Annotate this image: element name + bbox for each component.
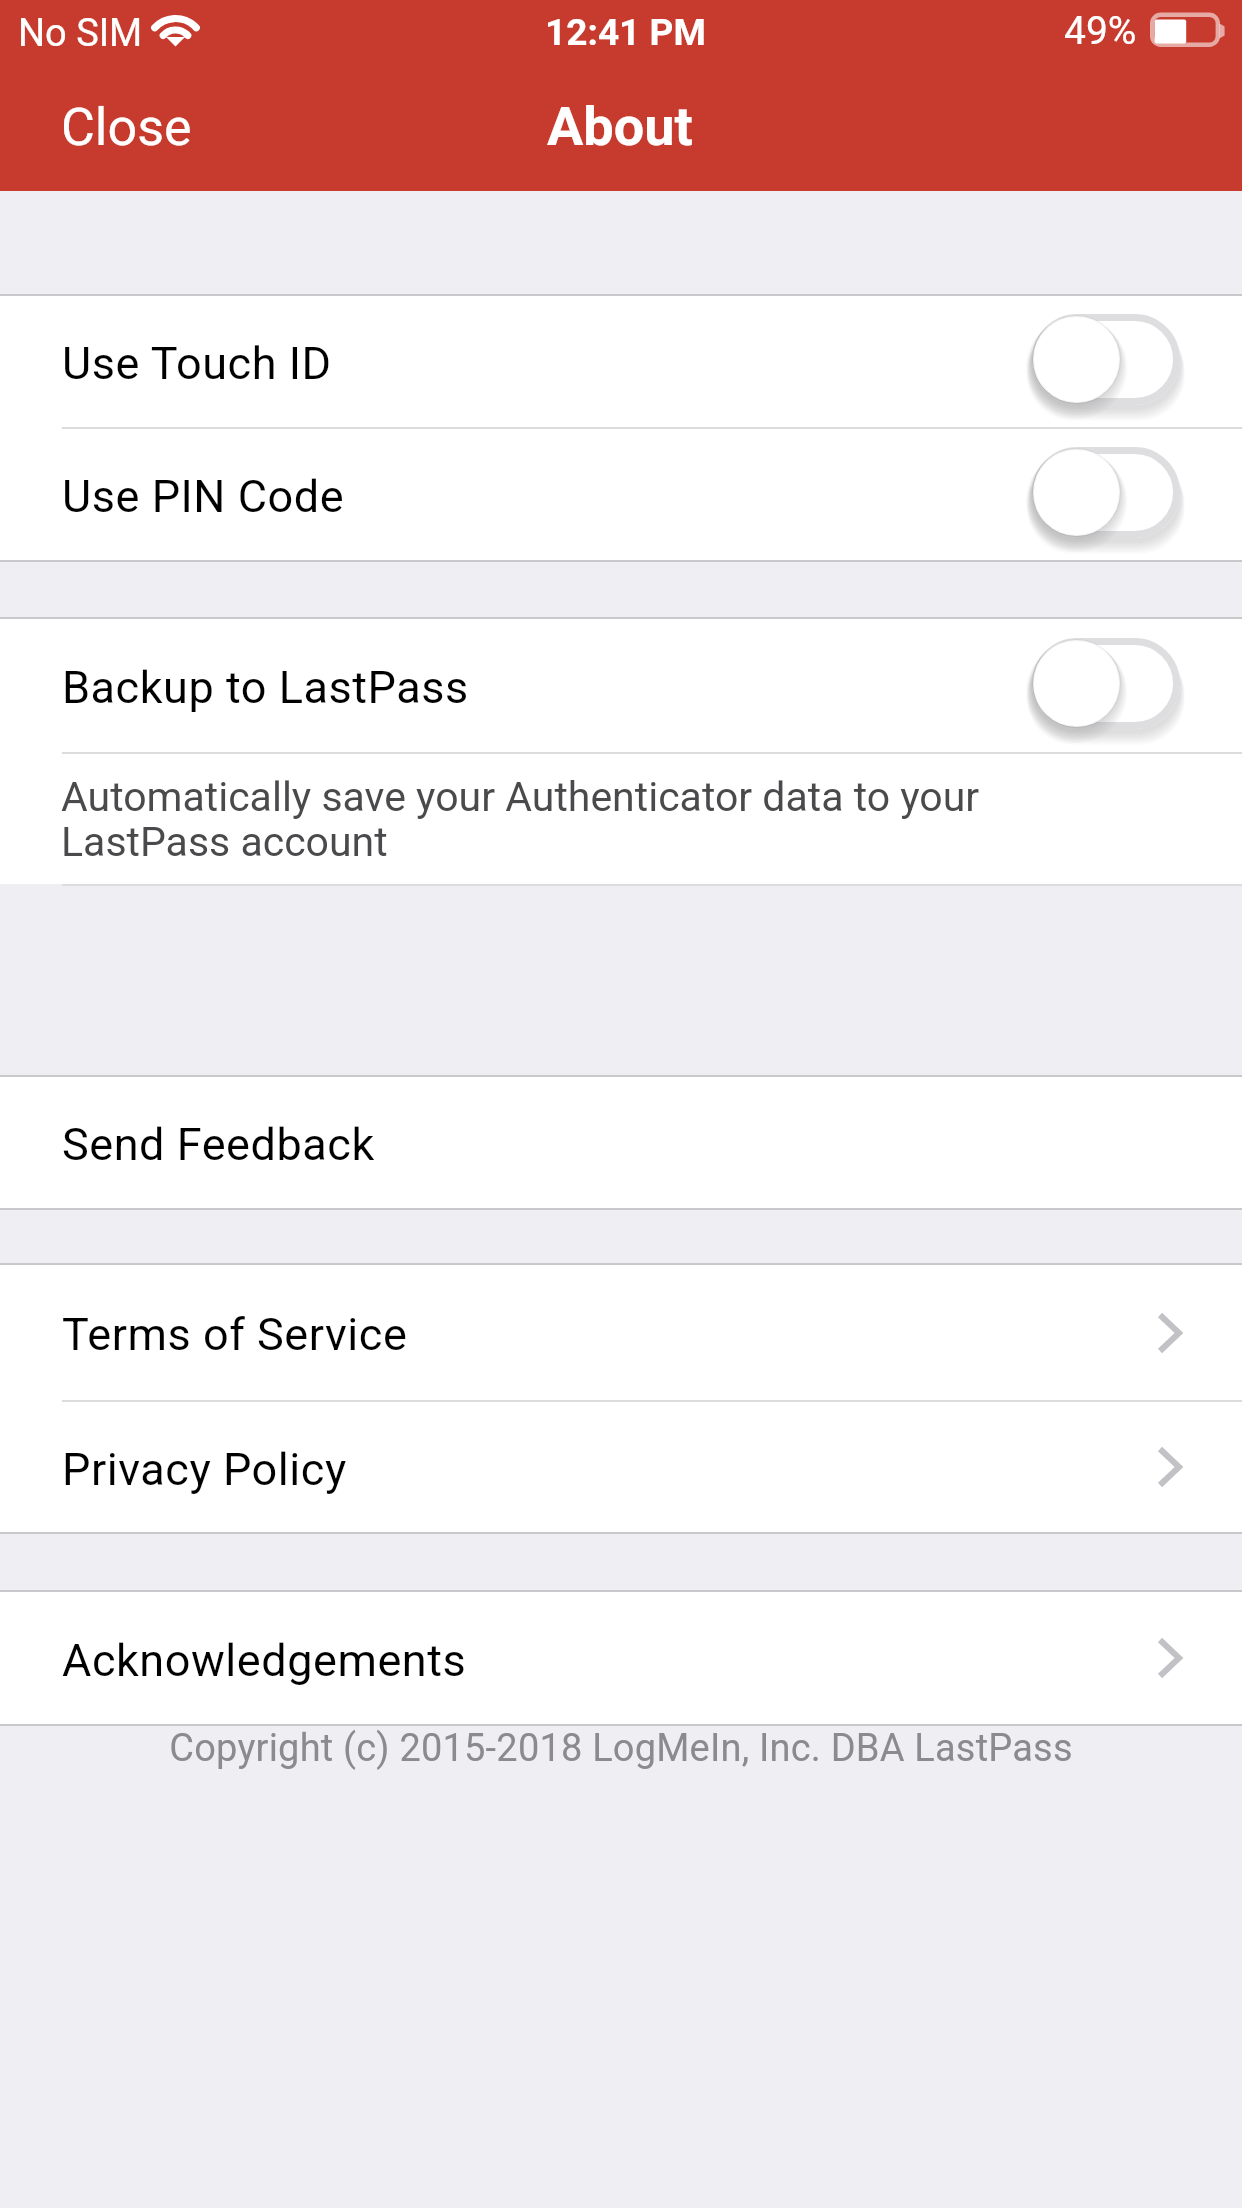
staticText: Acknowledgements	[62, 1634, 467, 1687]
staticText: Copyright (c) 2015-2018 LogMeIn, Inc. DB…	[169, 1726, 1073, 1770]
button[interactable]: Use Touch ID	[0, 296, 1242, 427]
button[interactable]: Privacy Policy	[0, 1402, 1242, 1532]
button[interactable]: Send Feedback	[0, 1077, 1242, 1208]
staticText: About	[547, 95, 693, 158]
staticText: Privacy Policy	[62, 1443, 347, 1496]
button[interactable]: Backup to LastPass	[0, 619, 1242, 752]
staticText: Automatically save your Authenticator da…	[61, 773, 980, 866]
staticText: Use Touch ID	[62, 337, 332, 390]
button[interactable]: Toggle	[1029, 631, 1191, 741]
button[interactable]: Terms of Service	[0, 1265, 1242, 1400]
button[interactable]: Toggle	[1029, 307, 1191, 417]
button[interactable]: Toggle	[1029, 440, 1191, 550]
button[interactable]: Close	[40, 76, 210, 176]
staticText: 12:41 PM	[545, 11, 706, 54]
staticText: Backup to LastPass	[62, 661, 469, 714]
staticText: Terms of Service	[62, 1308, 408, 1361]
button[interactable]: Use PIN Code	[0, 429, 1242, 560]
staticText: Use PIN Code	[62, 470, 345, 523]
staticText: No SIM	[18, 11, 143, 56]
button[interactable]: Acknowledgements	[0, 1592, 1242, 1724]
staticText: 49%	[1064, 8, 1137, 54]
staticText: Close	[61, 97, 192, 158]
staticText: Send Feedback	[62, 1118, 375, 1171]
